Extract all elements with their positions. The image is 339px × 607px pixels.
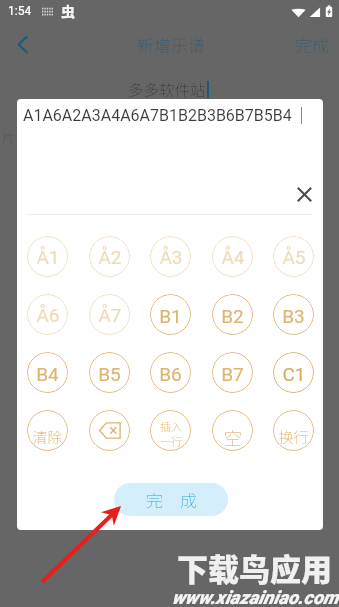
staticText: B5: [98, 363, 121, 385]
staticText: B7: [221, 363, 244, 385]
staticText: 下载鸟应用: [177, 545, 332, 590]
button[interactable]: 清除: [27, 410, 68, 451]
staticText: Å5: [282, 246, 306, 268]
staticText: A1A6A2A3A4A6A7B1B2B3B6B7B5B4: [23, 106, 292, 125]
staticText: www.xiazainiao.com: [172, 587, 339, 607]
staticText: 换行: [278, 426, 309, 448]
button[interactable]: B2: [212, 294, 253, 335]
staticText: B3: [282, 305, 305, 327]
staticText: 1:54: [8, 4, 32, 18]
staticText: 片: [2, 128, 16, 147]
button[interactable]: Å5: [273, 236, 314, 277]
button[interactable]: Å4: [212, 236, 253, 277]
button[interactable]: B4: [27, 352, 68, 393]
staticText: 清除: [32, 426, 63, 448]
button[interactable]: B1: [150, 294, 191, 335]
staticText: B2: [221, 305, 244, 327]
staticText: B6: [159, 363, 182, 385]
staticText: Å7: [98, 304, 122, 326]
staticText: 完成: [295, 32, 329, 57]
button[interactable]: B5: [89, 352, 130, 393]
button[interactable]: 完成: [295, 32, 329, 57]
staticText: 空: [224, 424, 242, 450]
staticText: 虫: [61, 1, 75, 21]
button[interactable]: Å6: [27, 294, 68, 335]
button[interactable]: B6: [150, 352, 191, 393]
staticText: 多多软件站: [128, 78, 206, 100]
staticText: 完 成: [146, 487, 197, 512]
staticText: Å3: [159, 246, 183, 268]
staticText: B4: [36, 363, 59, 385]
button[interactable]: Å7: [89, 294, 130, 335]
button[interactable]: 换行: [273, 410, 314, 451]
staticText: Å1: [36, 246, 60, 268]
button[interactable]: 插入 一行: [150, 410, 191, 451]
staticText: Å4: [221, 246, 245, 268]
button[interactable]: C1: [273, 352, 314, 393]
button[interactable]: Å2: [89, 236, 130, 277]
staticText: Å2: [98, 246, 122, 268]
staticText: B1: [159, 305, 182, 327]
button[interactable]: B3: [273, 294, 314, 335]
staticText: Å6: [36, 304, 60, 326]
button[interactable]: Å3: [150, 236, 191, 277]
button[interactable]: Close: [291, 181, 317, 207]
staticText: C1: [282, 363, 306, 385]
button[interactable]: 空: [212, 410, 253, 451]
button[interactable]: Back: [8, 30, 36, 58]
button[interactable]: [89, 410, 130, 451]
button[interactable]: 完 成: [114, 483, 228, 516]
staticText: 新增乐谱: [137, 32, 205, 57]
button[interactable]: B7: [212, 352, 253, 393]
staticText: 插入 一行: [160, 418, 182, 449]
button[interactable]: Å1: [27, 236, 68, 277]
